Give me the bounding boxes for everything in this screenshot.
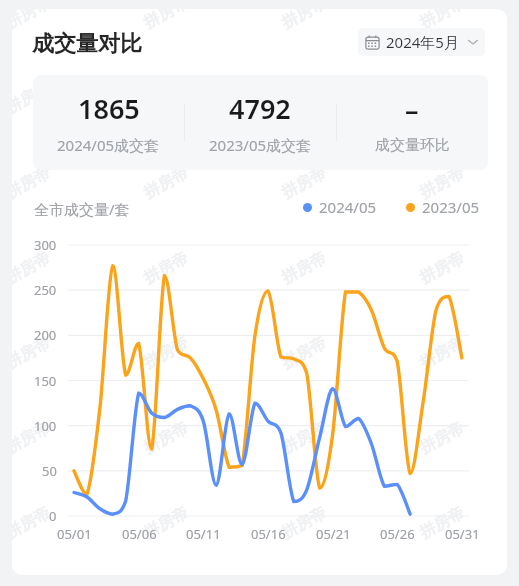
button[interactable]: 全市成交量/套 (34, 199, 130, 219)
staticText: 300 (34, 236, 57, 254)
staticText: 拼房帝 (278, 78, 330, 118)
staticText: 拼房帝 (416, 503, 468, 543)
button[interactable]: 1865 (33, 75, 184, 170)
staticText: 拼房帝 (12, 333, 54, 373)
staticText: 100 (34, 417, 57, 435)
staticText: 拼房帝 (140, 248, 192, 288)
staticText: 拼房帝 (12, 418, 54, 458)
staticText: 拼房帝 (140, 9, 192, 33)
staticText: 成交量对比 (32, 30, 142, 58)
staticText: 拼房帝 (278, 418, 330, 458)
staticText: 拼房帝 (140, 503, 192, 543)
staticText: 拼房帝 (12, 503, 54, 543)
staticText: 拼房帝 (278, 9, 330, 33)
staticText: 05/21 (316, 525, 351, 543)
staticText: 2023/05 (422, 197, 480, 217)
button[interactable]: – (336, 75, 488, 170)
staticText: 250 (34, 281, 57, 299)
staticText: 05/01 (57, 525, 92, 543)
staticText: 拼房帝 (278, 333, 330, 373)
staticText: 2024/05成交套 (57, 135, 160, 155)
staticText: 拼房帝 (416, 78, 468, 118)
staticText: 拼房帝 (416, 9, 468, 33)
staticText: 05/26 (380, 525, 415, 543)
staticText: 05/11 (186, 525, 221, 543)
staticText: 05/31 (445, 525, 480, 543)
staticText: 拼房帝 (416, 333, 468, 373)
staticText: 拼房帝 (12, 78, 54, 118)
staticText: 拼房帝 (278, 503, 330, 543)
staticText: 拼房帝 (140, 163, 192, 203)
staticText: 拼房帝 (278, 163, 330, 203)
staticText: 4792 (229, 90, 291, 127)
staticText: 2024年5月 (386, 32, 459, 52)
staticText: 拼房帝 (278, 248, 330, 288)
staticText: 2023/05成交套 (209, 135, 312, 155)
staticText: 2024/05 (319, 197, 377, 217)
staticText: 150 (34, 372, 57, 390)
staticText: 全市成交量/套 (34, 199, 130, 219)
staticText: 0 (49, 507, 57, 525)
staticText: 拼房帝 (416, 163, 468, 203)
staticText: 成交量环比 (375, 136, 450, 155)
staticText: 拼房帝 (416, 248, 468, 288)
other: Calendar (365, 35, 380, 50)
staticText: 拼房帝 (12, 248, 54, 288)
staticText: 拼房帝 (12, 163, 54, 203)
staticText: 拼房帝 (12, 9, 54, 33)
staticText: 50 (42, 462, 57, 480)
button[interactable]: Calendar (358, 28, 485, 56)
staticText: 拼房帝 (416, 418, 468, 458)
button[interactable]: 4792 (184, 75, 336, 170)
staticText: 1865 (78, 90, 140, 127)
staticText: 05/16 (251, 525, 286, 543)
staticText: 拼房帝 (140, 333, 192, 373)
button[interactable]: 成交量对比 (32, 30, 142, 58)
staticText: 200 (34, 326, 57, 344)
staticText: 拼房帝 (140, 418, 192, 458)
staticText: 05/06 (122, 525, 157, 543)
staticText: – (405, 91, 419, 128)
